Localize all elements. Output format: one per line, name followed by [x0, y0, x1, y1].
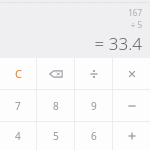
button[interactable]: 5 [37, 122, 74, 150]
button[interactable]: Divide [75, 58, 112, 89]
staticText: 8 [53, 99, 59, 113]
staticText: 9 [91, 99, 97, 113]
button[interactable]: 7 [0, 90, 36, 121]
staticText: ÷ 5 [130, 19, 142, 30]
staticText: 5 [53, 129, 59, 143]
staticText: = 33.4 [94, 32, 142, 54]
button[interactable]: 8 [37, 90, 74, 121]
button[interactable]: Multiply [113, 58, 150, 89]
staticText: C [15, 66, 22, 81]
button[interactable]: Backspace [37, 58, 74, 89]
staticText: 6 [91, 129, 97, 143]
button[interactable]: 9 [75, 90, 112, 121]
staticText: 4 [15, 129, 21, 143]
staticText: 167 [128, 7, 142, 18]
button[interactable]: Plus [113, 122, 150, 150]
button[interactable]: 4 [0, 122, 36, 150]
button[interactable]: Minus [113, 90, 150, 121]
button[interactable]: C [0, 58, 36, 89]
button[interactable]: 6 [75, 122, 112, 150]
staticText: 7 [15, 99, 21, 113]
